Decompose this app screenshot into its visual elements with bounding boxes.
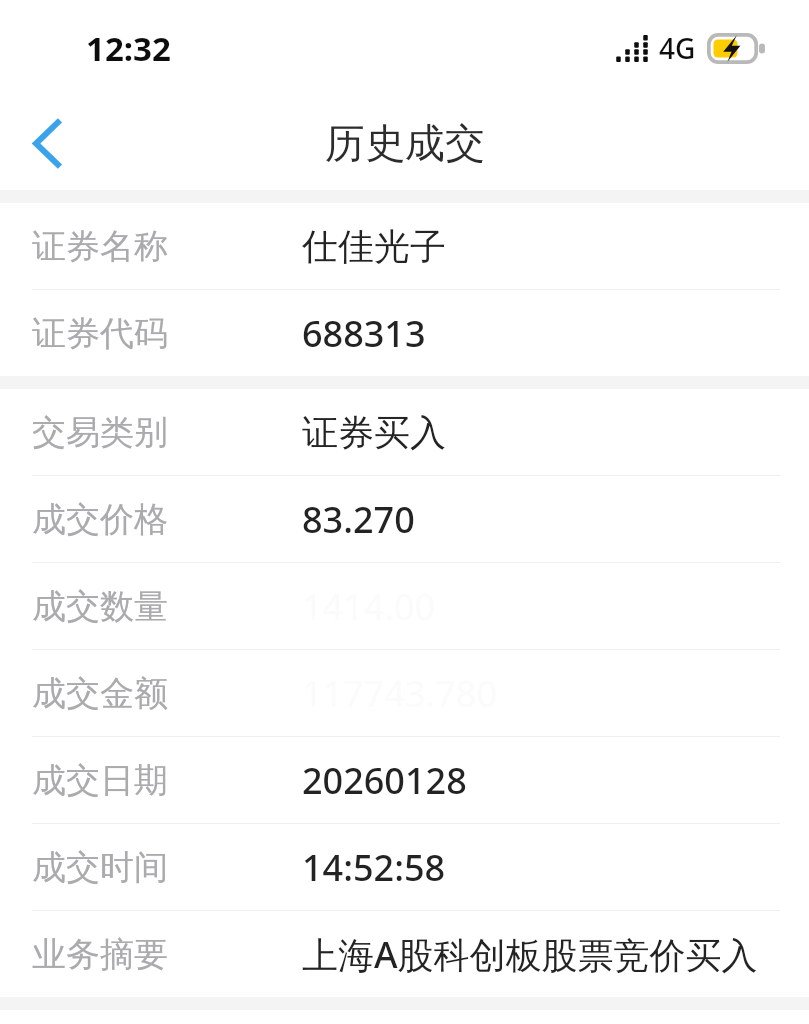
staticText: 交易类别	[32, 411, 168, 454]
button[interactable]: 交易类别	[0, 389, 809, 476]
button[interactable]: 成交日期	[0, 737, 809, 824]
staticText: 成交时间	[32, 846, 168, 889]
staticText: 成交数量	[32, 585, 168, 628]
staticText: 83.270	[302, 495, 415, 544]
button[interactable]: 成交价格	[0, 476, 809, 563]
staticText: 4G	[659, 29, 696, 67]
staticText: 证券名称	[32, 225, 168, 268]
staticText: 仕佳光子	[302, 224, 446, 269]
staticText: 12:32	[86, 26, 171, 71]
staticText: 证券买入	[302, 410, 446, 455]
staticText: 上海A股科创板股票竞价买入	[302, 930, 758, 979]
staticText: 成交日期	[32, 759, 168, 802]
button[interactable]: 成交时间	[0, 824, 809, 911]
button[interactable]: 成交金额	[0, 650, 809, 737]
staticText: 历史成交	[325, 118, 485, 168]
button[interactable]: 业务摘要	[0, 911, 809, 997]
button[interactable]: 成交数量	[0, 563, 809, 650]
staticText: 成交金额	[32, 672, 168, 715]
staticText: 14:52:58	[302, 843, 446, 892]
staticText: 业务摘要	[32, 933, 168, 976]
staticText: 证券代码	[32, 312, 168, 355]
staticText: 688313	[302, 309, 426, 358]
button[interactable]: 证券代码	[0, 290, 809, 376]
staticText: 20260128	[302, 756, 467, 805]
staticText: 成交价格	[32, 498, 168, 541]
button[interactable]: Back	[0, 97, 92, 189]
button[interactable]: 证券名称	[0, 203, 809, 290]
